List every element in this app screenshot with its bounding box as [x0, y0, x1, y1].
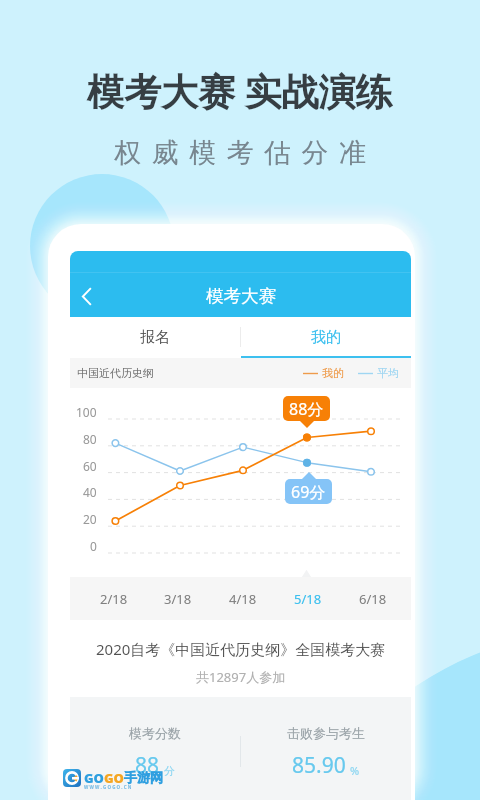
button[interactable]: 报名 [70, 317, 240, 358]
staticText: GO [84, 769, 104, 787]
staticText: 88分 [289, 398, 324, 420]
staticText: 69分 [291, 481, 326, 503]
button[interactable]: 击败参与考生 [240, 697, 411, 800]
staticText: 平均 [377, 366, 399, 380]
button[interactable]: 5/18 [282, 577, 334, 620]
staticText: 85.90 [292, 751, 346, 780]
staticText: 5/18 [294, 590, 322, 608]
button[interactable]: 2/18 [88, 577, 140, 620]
staticText: 0 [90, 538, 97, 554]
staticText: 100 [76, 404, 97, 420]
staticText: 报名 [140, 328, 170, 347]
staticText: 手游网 [124, 769, 163, 785]
staticText: 中国近代历史纲 [77, 366, 154, 380]
staticText: 分 [164, 764, 175, 778]
staticText: 4/18 [229, 590, 257, 608]
button[interactable]: 模考分数 [70, 697, 240, 800]
staticText: 2/18 [100, 590, 128, 608]
staticText: % [350, 763, 360, 778]
staticText: 模考大赛 实战演练 [87, 65, 393, 116]
staticText: 60 [83, 458, 97, 474]
staticText: 3/18 [164, 590, 192, 608]
staticText: 我的 [322, 366, 344, 380]
staticText: 80 [83, 431, 97, 447]
staticText: 模考分数 [129, 725, 181, 741]
staticText: 共12897人参加 [196, 668, 286, 686]
staticText: 模考大赛 [206, 285, 276, 307]
staticText: GO [104, 769, 124, 787]
staticText: W W W . G O G O . C N [84, 784, 132, 790]
staticText: 我的 [311, 328, 341, 347]
staticText: 2020自考《中国近代历史纲》全国模考大赛 [96, 639, 386, 659]
button[interactable]: Back [70, 274, 108, 317]
button[interactable]: 3/18 [152, 577, 204, 620]
staticText: 40 [83, 484, 97, 500]
button[interactable]: 4/18 [217, 577, 269, 620]
staticText: 20 [83, 511, 97, 527]
staticText: 6/18 [359, 590, 387, 608]
staticText: 权威模考估分准 [114, 136, 377, 170]
button[interactable]: 我的 [241, 317, 411, 358]
staticText: 88 [135, 751, 160, 780]
button[interactable]: 6/18 [347, 577, 399, 620]
staticText: 击败参与考生 [287, 725, 365, 741]
